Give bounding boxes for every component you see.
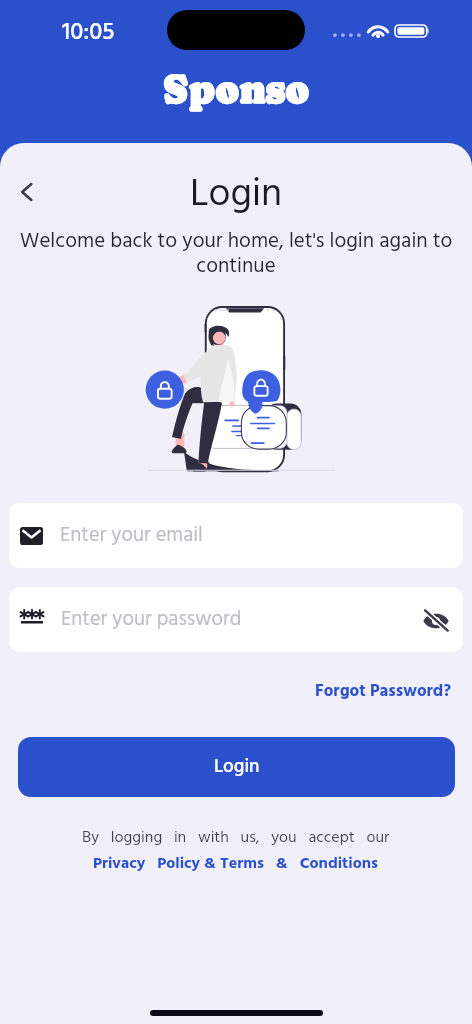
staticText: 10:05 [62, 14, 115, 52]
button[interactable]: Show password [412, 596, 460, 644]
staticText: Enter your password [61, 603, 242, 636]
staticText: Login [0, 164, 472, 226]
staticText: Login [214, 752, 260, 782]
staticText: Sponso [0, 66, 472, 112]
button[interactable]: Forgot Password? [0, 678, 451, 705]
staticText: By logging in with us, you accept our [82, 825, 390, 851]
staticText: Welcome back to your home, let's login a… [12, 225, 460, 284]
staticText: Enter your email [60, 519, 203, 552]
button[interactable]: Enter your email [9, 503, 463, 568]
button[interactable]: Login [18, 737, 455, 797]
button[interactable]: Back [5, 170, 49, 214]
button[interactable]: Privacy Policy & Terms & Conditions [93, 851, 379, 877]
button[interactable]: Enter your password [9, 587, 463, 652]
